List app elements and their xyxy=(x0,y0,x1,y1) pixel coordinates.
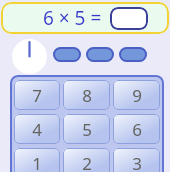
button[interactable]: 4 xyxy=(14,114,60,144)
staticText: 5 xyxy=(82,118,92,141)
button[interactable] xyxy=(119,47,147,62)
staticText: 1 xyxy=(32,152,42,172)
button[interactable]: 9 xyxy=(113,80,160,110)
button[interactable]: 7 xyxy=(14,80,60,110)
button[interactable]: 8 xyxy=(63,80,110,110)
button[interactable]: 3 xyxy=(113,148,160,172)
staticText: 8 xyxy=(82,84,92,107)
button[interactable]: 2 xyxy=(63,148,110,172)
staticText: 7 xyxy=(32,84,42,107)
button[interactable] xyxy=(53,47,81,62)
button[interactable]: 1 xyxy=(14,148,60,172)
staticText: 6 × 5 = xyxy=(43,5,102,31)
staticText: 4 xyxy=(32,118,42,141)
button[interactable]: 5 xyxy=(63,114,110,144)
staticText: 3 xyxy=(132,152,142,172)
button[interactable]: 6 xyxy=(113,114,160,144)
button[interactable] xyxy=(86,47,114,62)
button[interactable] xyxy=(110,7,148,30)
staticText: 9 xyxy=(132,84,142,107)
staticText: 2 xyxy=(82,152,92,172)
staticText: 6 xyxy=(132,118,142,141)
